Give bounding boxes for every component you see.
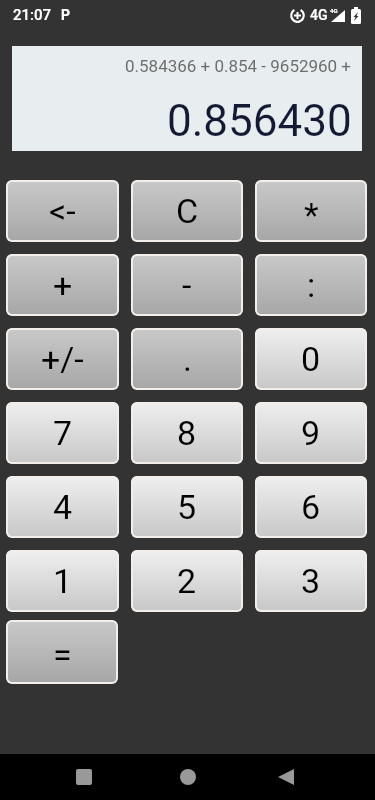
button[interactable]: 5 xyxy=(131,476,243,538)
staticText: C xyxy=(176,191,199,231)
button[interactable]: 2 xyxy=(131,550,243,612)
staticText: 8 xyxy=(177,413,197,453)
button[interactable]: C xyxy=(131,180,243,242)
button[interactable]: 9 xyxy=(255,402,367,464)
staticText: 21:07 xyxy=(13,6,52,24)
staticText: . xyxy=(183,339,192,379)
staticText: 0.856430 xyxy=(167,95,352,147)
button[interactable] xyxy=(278,769,294,785)
staticText: 3 xyxy=(301,561,321,601)
button[interactable] xyxy=(180,769,196,785)
staticText: 1 xyxy=(53,561,73,601)
staticText: 4G xyxy=(310,7,328,23)
staticText: = xyxy=(53,635,72,675)
button[interactable]: +/- xyxy=(6,328,119,390)
staticText: 6 xyxy=(301,487,321,527)
button[interactable]: - xyxy=(131,254,243,316)
staticText: Р xyxy=(61,7,71,23)
button[interactable]: 7 xyxy=(6,402,119,464)
staticText: +/- xyxy=(41,339,84,379)
staticText: 4G xyxy=(330,7,338,14)
staticText: 2 xyxy=(177,561,197,601)
staticText: - xyxy=(182,265,192,305)
staticText: 0.584366 + 0.854 - 9652960 + xyxy=(125,56,352,76)
button[interactable]: + xyxy=(6,254,119,316)
button[interactable]: 1 xyxy=(6,550,119,612)
staticText: * xyxy=(304,195,319,235)
button[interactable]: <- xyxy=(6,180,119,242)
button[interactable]: 4 xyxy=(6,476,119,538)
staticText: 0 xyxy=(301,339,321,379)
button[interactable] xyxy=(76,769,92,785)
button[interactable]: * xyxy=(255,180,367,242)
button[interactable]: 3 xyxy=(255,550,367,612)
button[interactable]: . xyxy=(131,328,243,390)
staticText: <- xyxy=(49,191,76,231)
button[interactable]: : xyxy=(255,254,367,316)
button[interactable]: 0 xyxy=(255,328,367,390)
staticText: 7 xyxy=(53,413,73,453)
staticText: 9 xyxy=(301,413,321,453)
staticText: 4 xyxy=(53,487,73,527)
button[interactable]: = xyxy=(6,620,118,684)
button[interactable]: 8 xyxy=(131,402,243,464)
staticText: + xyxy=(53,265,73,305)
staticText: : xyxy=(307,265,316,305)
button[interactable]: 6 xyxy=(255,476,367,538)
staticText: 5 xyxy=(177,487,197,527)
